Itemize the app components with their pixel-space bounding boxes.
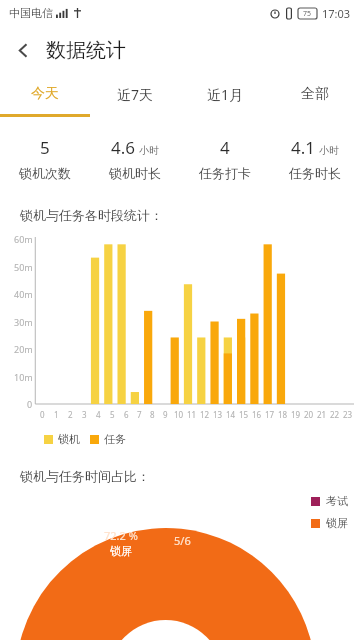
- staticText: 锁屏: [110, 544, 132, 558]
- staticText: 15: [239, 409, 249, 420]
- staticText: 14: [226, 409, 236, 420]
- staticText: 12: [200, 409, 210, 420]
- staticText: 任务: [104, 432, 126, 446]
- staticText: 锁机与任务各时段统计：: [20, 207, 163, 223]
- staticText: 小时: [319, 144, 339, 157]
- staticText: 3: [82, 409, 87, 420]
- staticText: 5: [110, 409, 115, 420]
- staticText: 4.1: [291, 136, 316, 159]
- staticText: 9: [163, 409, 168, 420]
- staticText: 锁机: [58, 432, 80, 446]
- staticText: 16: [252, 409, 262, 420]
- staticText: 7: [137, 409, 142, 420]
- staticText: 40m: [14, 288, 33, 300]
- staticText: 锁机时长: [109, 165, 161, 181]
- staticText: 13: [213, 409, 223, 420]
- staticText: 今天: [31, 85, 59, 103]
- staticText: 6: [124, 409, 129, 420]
- staticText: 22: [330, 409, 340, 420]
- staticText: 19: [291, 409, 301, 420]
- staticText: 锁屏: [326, 516, 348, 530]
- staticText: 5: [40, 136, 50, 159]
- staticText: 2: [68, 409, 73, 420]
- staticText: 中国电信: [9, 6, 53, 20]
- staticText: 23: [343, 409, 353, 420]
- staticText: 小时: [139, 144, 159, 157]
- staticText: 5/6: [174, 533, 191, 548]
- staticText: 60m: [14, 233, 33, 245]
- staticText: 72.2 %: [104, 528, 138, 543]
- staticText: 20m: [14, 343, 33, 355]
- button[interactable]: 近7天: [90, 74, 180, 114]
- staticText: 1: [54, 409, 59, 420]
- button[interactable]: 返回: [0, 27, 46, 73]
- staticText: 数据统计: [46, 38, 126, 63]
- staticText: 0: [27, 398, 33, 410]
- staticText: 近1月: [207, 85, 244, 104]
- staticText: 0: [40, 409, 45, 420]
- staticText: 任务时长: [289, 165, 341, 181]
- staticText: 锁机与任务时间占比：: [20, 468, 150, 484]
- staticText: 锁机次数: [19, 165, 71, 181]
- staticText: 75: [303, 9, 312, 19]
- staticText: 4: [96, 409, 101, 420]
- staticText: 4: [220, 136, 230, 159]
- staticText: 18: [278, 409, 288, 420]
- button[interactable]: 全部: [270, 74, 360, 114]
- staticText: 21: [317, 409, 327, 420]
- staticText: 50m: [14, 261, 33, 273]
- button[interactable]: 近1月: [180, 74, 270, 114]
- staticText: 10m: [14, 371, 33, 383]
- button[interactable]: 今天: [0, 74, 90, 114]
- staticText: 11: [187, 409, 197, 420]
- staticText: 全部: [301, 85, 329, 103]
- staticText: 考试: [326, 494, 348, 508]
- staticText: 近7天: [117, 85, 154, 104]
- staticText: 4.6: [111, 136, 136, 159]
- staticText: 10: [174, 409, 184, 420]
- staticText: 17:03: [322, 6, 351, 21]
- staticText: 20: [304, 409, 314, 420]
- staticText: 任务打卡: [199, 165, 251, 181]
- staticText: 8: [150, 409, 155, 420]
- staticText: 30m: [14, 316, 33, 328]
- staticText: 17: [265, 409, 275, 420]
